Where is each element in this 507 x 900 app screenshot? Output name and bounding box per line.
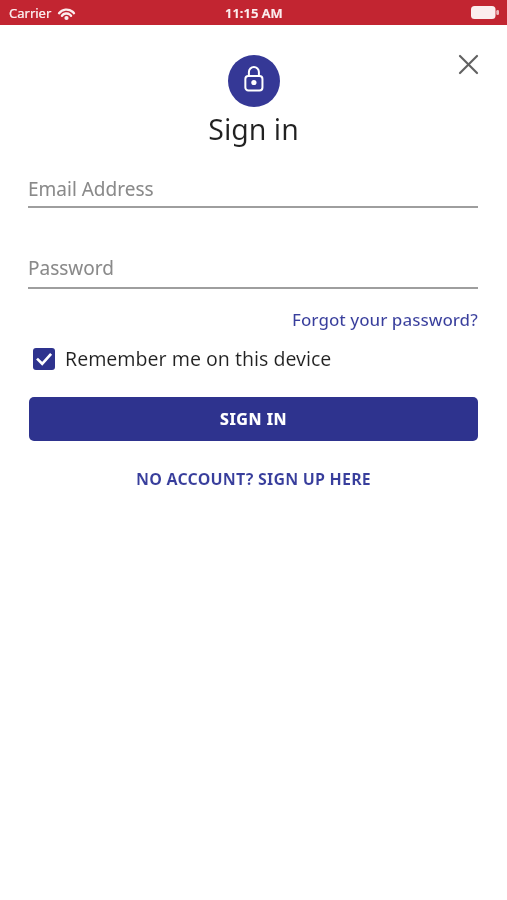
staticText: Email Address [28, 176, 154, 202]
staticText: Remember me on this device [65, 345, 332, 372]
staticText: SIGN IN [220, 408, 288, 430]
button[interactable]: NO ACCOUNT? SIGN UP HERE [136, 468, 372, 490]
staticText: 11:15 AM [225, 4, 283, 22]
button[interactable]: Remember me on this device [33, 345, 332, 372]
staticText: Sign in [0, 110, 507, 149]
staticText: Password [28, 255, 114, 281]
button[interactable] [450, 46, 486, 82]
staticText: Carrier [9, 4, 52, 22]
button[interactable]: SIGN IN [29, 397, 478, 441]
button[interactable]: Forgot your password? [292, 308, 478, 331]
